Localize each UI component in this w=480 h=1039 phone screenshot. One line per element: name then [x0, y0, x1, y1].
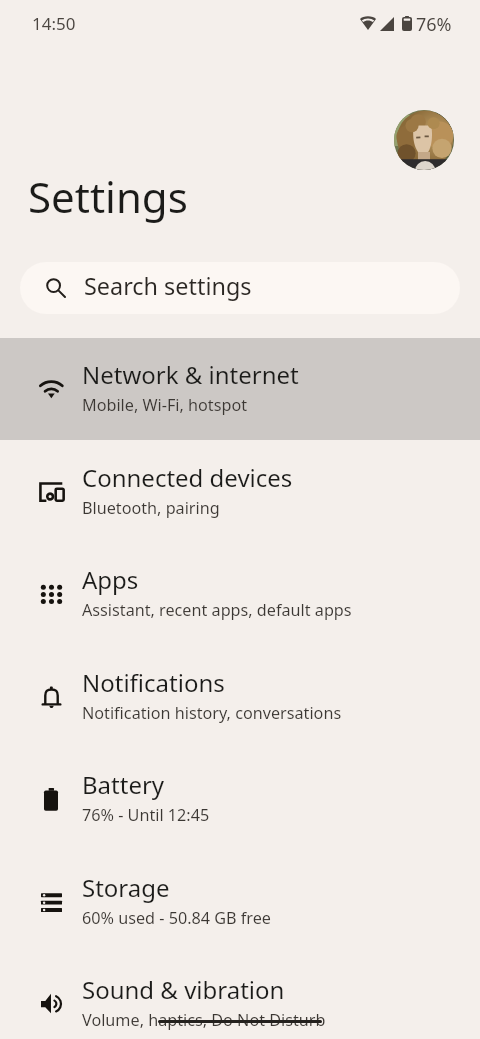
staticText: Volume, haptics, Do Not Disturb [82, 1009, 326, 1031]
button[interactable]: Sound & vibration [0, 953, 480, 1039]
button[interactable]: Account profile [394, 110, 454, 170]
staticText: Sound & vibration [82, 973, 285, 1006]
staticText: Storage [82, 871, 170, 904]
button[interactable]: Connected devices [0, 441, 480, 543]
button[interactable]: Notifications [0, 646, 480, 748]
staticText: Network & internet [82, 358, 299, 391]
staticText: 14:50 [32, 12, 76, 35]
button[interactable]: Battery [0, 748, 480, 850]
button[interactable]: Storage [0, 851, 480, 953]
staticText: Apps [82, 563, 139, 596]
staticText: Bluetooth, pairing [82, 497, 220, 519]
button[interactable]: Apps [0, 543, 480, 645]
staticText: Notifications [82, 666, 225, 699]
staticText: Settings [28, 168, 188, 225]
staticText: Connected devices [82, 461, 293, 494]
button[interactable]: Search settings [20, 262, 460, 314]
staticText: 60% used - 50.84 GB free [82, 907, 271, 929]
staticText: Search settings [84, 270, 252, 302]
staticText: Battery [82, 768, 165, 801]
staticText: 76% [416, 12, 452, 37]
staticText: Notification history, conversations [82, 702, 342, 724]
staticText: Assistant, recent apps, default apps [82, 599, 352, 621]
staticText: 76% - Until 12:45 [82, 804, 210, 826]
staticText: Mobile, Wi-Fi, hotspot [82, 394, 248, 416]
button[interactable]: Network & internet [0, 338, 480, 440]
